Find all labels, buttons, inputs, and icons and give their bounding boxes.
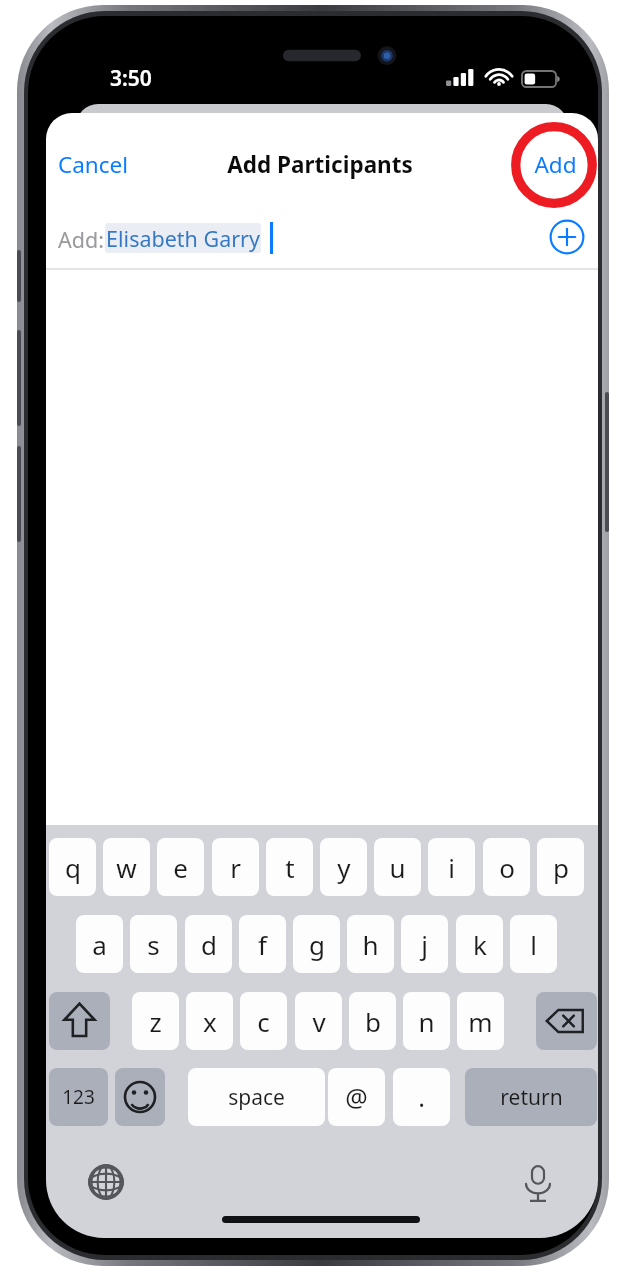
- staticText: 3:50: [110, 64, 152, 93]
- staticText: q: [65, 850, 81, 885]
- button[interactable]: @: [328, 1068, 385, 1126]
- button[interactable]: f: [239, 915, 286, 973]
- button[interactable]: Add contact: [546, 216, 588, 258]
- staticText: w: [116, 850, 137, 885]
- staticText: a: [92, 927, 107, 962]
- staticText: t: [285, 850, 295, 885]
- button[interactable]: Cancel: [58, 140, 164, 188]
- button[interactable]: r: [212, 838, 259, 896]
- button[interactable]: Emoji: [115, 1068, 165, 1126]
- button[interactable]: g: [293, 915, 340, 973]
- button[interactable]: n: [403, 992, 450, 1050]
- button[interactable]: y: [320, 838, 367, 896]
- button[interactable]: return: [465, 1068, 597, 1126]
- button[interactable]: space: [188, 1068, 325, 1126]
- staticText: f: [258, 927, 267, 962]
- staticText: e: [173, 850, 188, 885]
- staticText: h: [362, 927, 379, 962]
- button[interactable]: .: [393, 1068, 450, 1126]
- staticText: Add Participants: [227, 149, 413, 180]
- button[interactable]: u: [374, 838, 421, 896]
- button[interactable]: b: [349, 992, 396, 1050]
- staticText: j: [421, 927, 428, 962]
- staticText: i: [448, 850, 455, 885]
- staticText: n: [418, 1004, 435, 1039]
- staticText: m: [468, 1004, 493, 1039]
- staticText: .: [418, 1080, 425, 1114]
- button[interactable]: Shift: [49, 992, 110, 1050]
- button[interactable]: h: [347, 915, 394, 973]
- staticText: Cancel: [58, 149, 129, 180]
- button[interactable]: v: [295, 992, 342, 1050]
- staticText: Add:: [58, 225, 104, 254]
- button[interactable]: e: [157, 838, 204, 896]
- button[interactable]: z: [132, 992, 179, 1050]
- button[interactable]: k: [456, 915, 503, 973]
- staticText: 123: [62, 1084, 95, 1110]
- button[interactable]: i: [428, 838, 475, 896]
- staticText: s: [147, 927, 160, 962]
- button[interactable]: w: [103, 838, 150, 896]
- button[interactable]: l: [510, 915, 557, 973]
- button[interactable]: Switch keyboard: [86, 1162, 126, 1202]
- button[interactable]: q: [49, 838, 96, 896]
- button[interactable]: m: [457, 992, 504, 1050]
- staticText: z: [149, 1004, 162, 1039]
- button[interactable]: 123: [49, 1068, 108, 1126]
- staticText: k: [473, 927, 487, 962]
- button[interactable]: Dictation: [518, 1160, 558, 1204]
- staticText: d: [201, 927, 217, 962]
- staticText: Add: [534, 149, 577, 180]
- staticText: x: [203, 1004, 217, 1039]
- staticText: v: [312, 1004, 326, 1039]
- button[interactable]: j: [401, 915, 448, 973]
- button[interactable]: a: [76, 915, 123, 973]
- staticText: l: [530, 927, 537, 962]
- button[interactable]: Add: [524, 140, 586, 188]
- button[interactable]: d: [185, 915, 232, 973]
- button[interactable]: Elisabeth Garry: [105, 223, 261, 253]
- staticText: p: [553, 850, 569, 885]
- staticText: y: [337, 850, 351, 885]
- button[interactable]: s: [130, 915, 177, 973]
- staticText: b: [365, 1004, 381, 1039]
- button[interactable]: p: [537, 838, 584, 896]
- staticText: space: [228, 1083, 285, 1112]
- staticText: return: [500, 1083, 563, 1112]
- button[interactable]: x: [186, 992, 233, 1050]
- button[interactable]: c: [240, 992, 287, 1050]
- button[interactable]: t: [266, 838, 313, 896]
- staticText: o: [499, 850, 515, 885]
- staticText: @: [345, 1080, 368, 1114]
- staticText: g: [309, 927, 325, 962]
- staticText: c: [257, 1004, 270, 1039]
- staticText: u: [389, 850, 406, 885]
- button[interactable]: o: [483, 838, 530, 896]
- staticText: Elisabeth Garry: [106, 224, 260, 253]
- button[interactable]: Backspace: [536, 992, 597, 1050]
- staticText: r: [230, 850, 241, 885]
